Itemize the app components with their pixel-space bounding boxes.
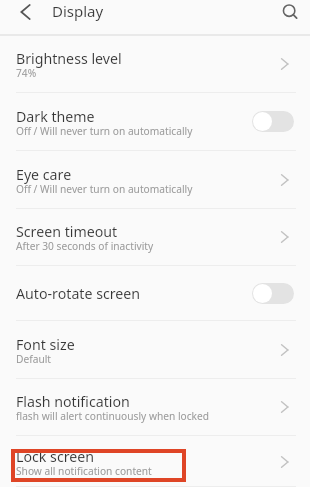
staticText: Display (52, 1, 104, 21)
staticText: Font size (16, 335, 75, 354)
staticText: Auto-rotate screen (16, 284, 141, 303)
button[interactable]: Toggle (252, 283, 294, 304)
button[interactable]: Auto-rotate screen (0, 266, 310, 321)
staticText: Dark theme (16, 107, 95, 126)
button[interactable]: Eye care (0, 151, 310, 209)
staticText: Lock screen (16, 447, 95, 466)
staticText: flash will alert continuously when locke… (16, 409, 210, 423)
button[interactable]: Back (9, 0, 45, 24)
staticText: Brightness level (16, 49, 122, 68)
button[interactable]: Brightness level (0, 36, 310, 93)
button[interactable]: Toggle (252, 111, 294, 132)
staticText: Default (16, 352, 52, 366)
staticText: Screen timeout (16, 222, 118, 241)
button[interactable]: Dark theme (0, 93, 310, 151)
button[interactable]: Flash notification (0, 379, 310, 436)
staticText: Off / Will never turn on automatically (16, 182, 193, 196)
button[interactable]: Search (272, 0, 308, 24)
button[interactable]: Screen timeout (0, 209, 310, 266)
staticText: After 30 seconds of inactivity (16, 239, 154, 253)
staticText: Off / Will never turn on automatically (16, 124, 193, 138)
button[interactable]: Lock screen (0, 436, 310, 487)
button[interactable]: Font size (0, 321, 310, 379)
staticText: 74% (16, 66, 37, 80)
staticText: Eye care (16, 165, 72, 184)
staticText: Flash notification (16, 392, 130, 411)
staticText: Show all notification content (16, 464, 152, 478)
